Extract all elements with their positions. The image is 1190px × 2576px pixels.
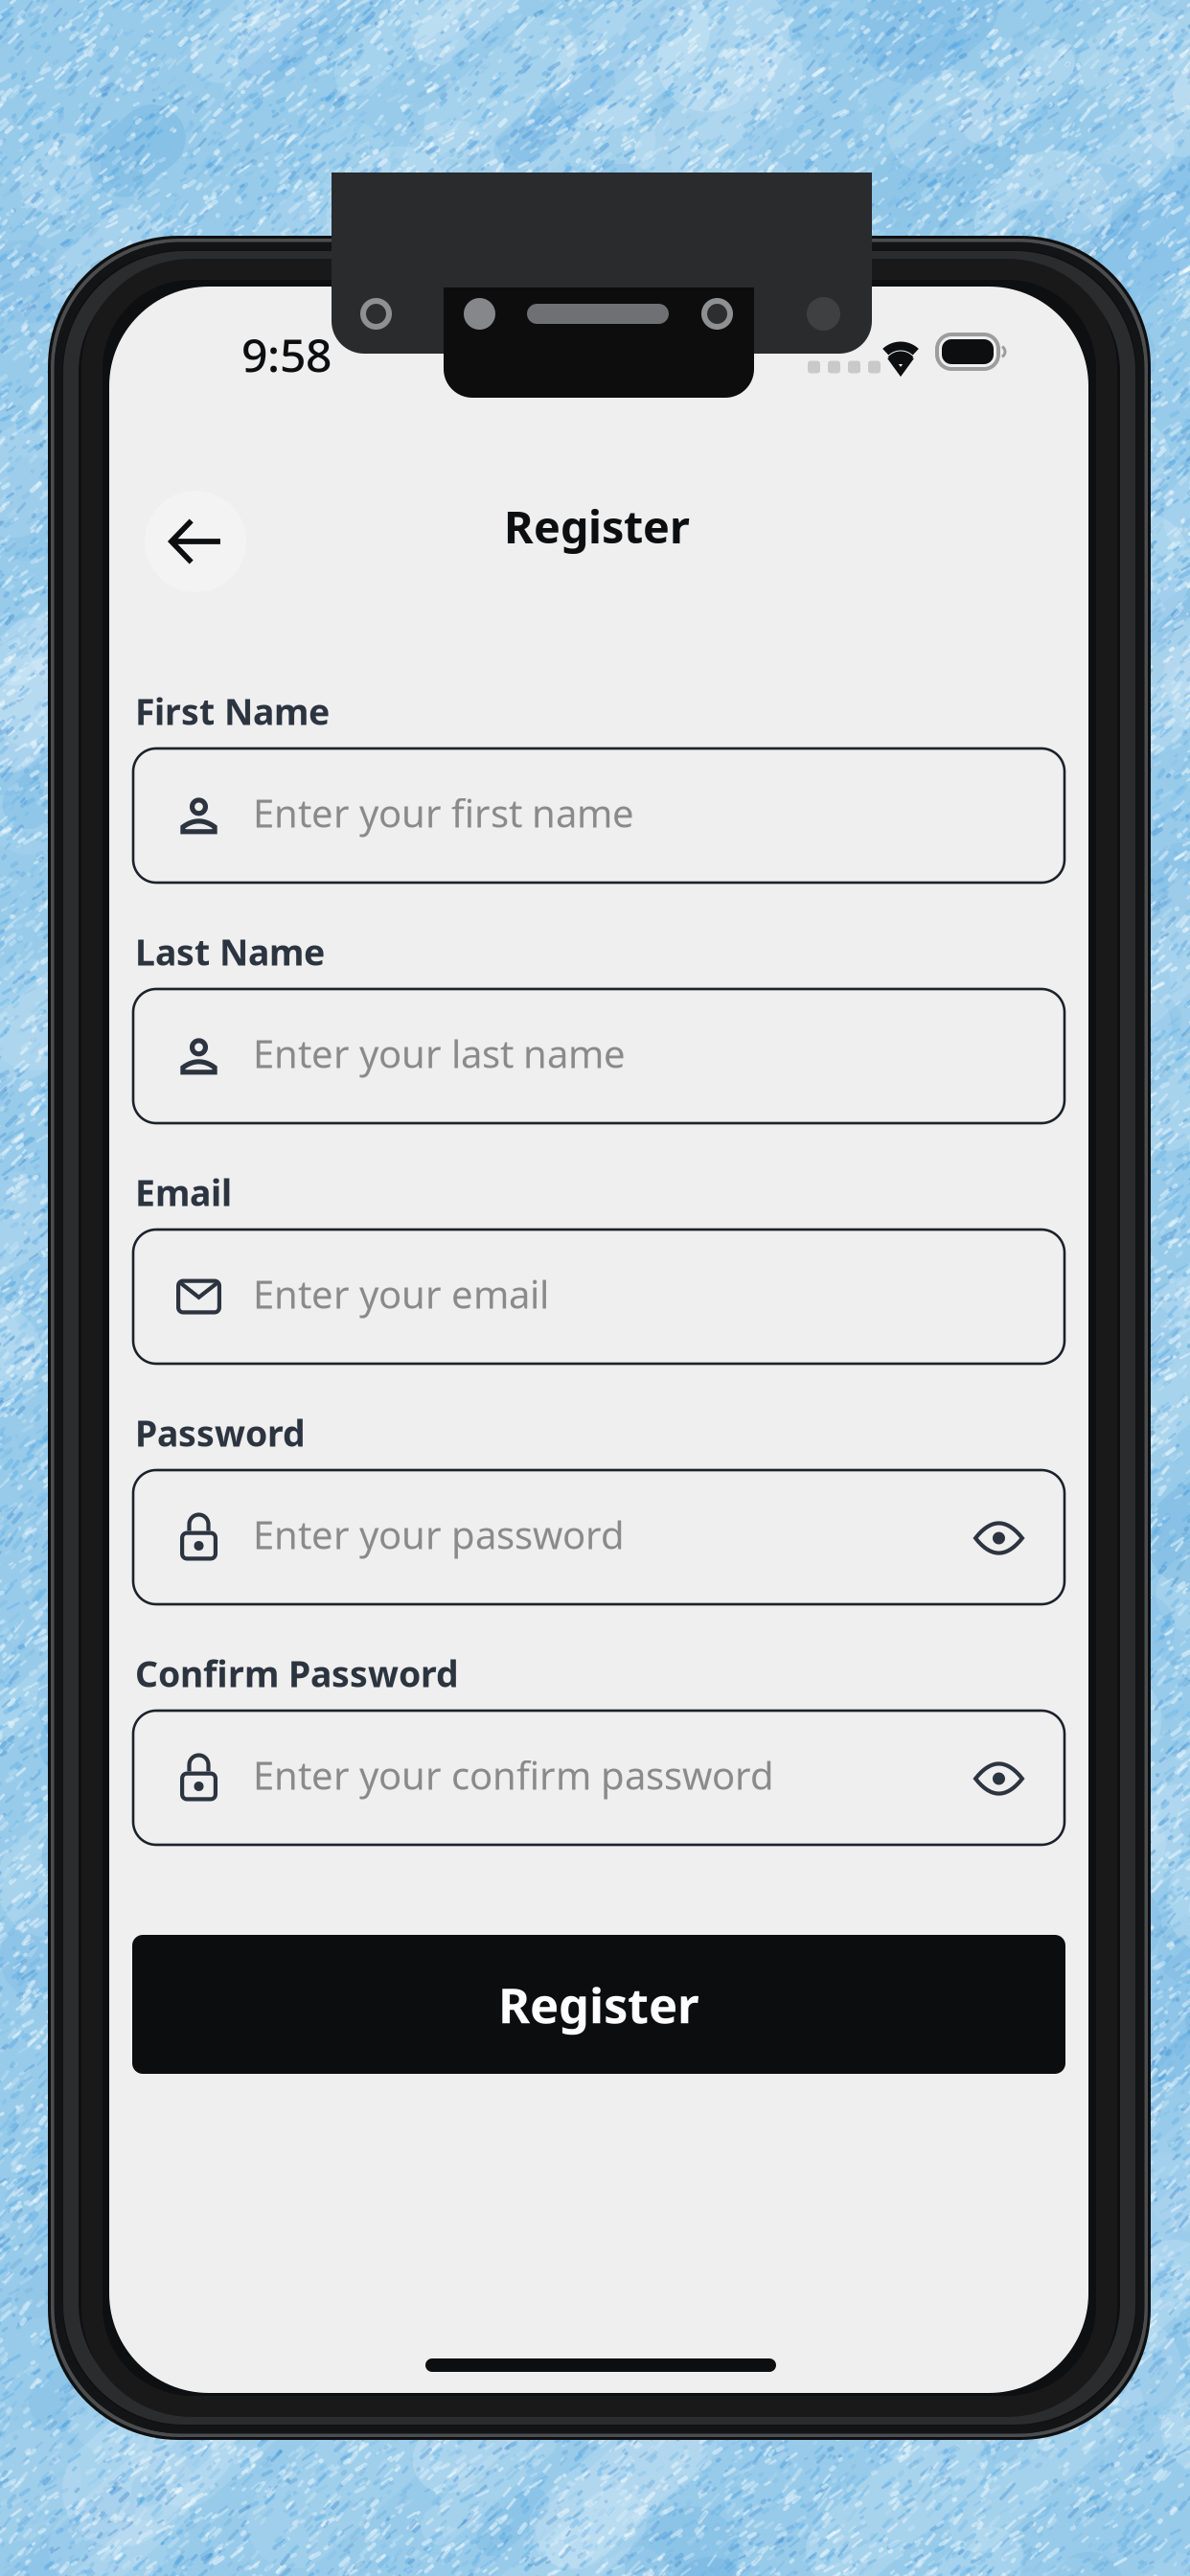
- staticText: Last Name: [135, 928, 325, 975]
- button[interactable]: Back: [145, 491, 246, 592]
- staticText: Enter your email: [253, 1268, 549, 1319]
- button[interactable]: Enter your password: [133, 1470, 1064, 1604]
- staticText: Confirm Password: [135, 1649, 459, 1697]
- staticText: 9:58: [241, 324, 332, 385]
- button[interactable]: Enter your last name: [133, 989, 1064, 1123]
- staticText: Email: [135, 1168, 232, 1216]
- button[interactable]: Enter your first name: [133, 748, 1064, 883]
- button[interactable]: Register: [132, 1935, 1065, 2074]
- button[interactable]: Show password: [962, 1520, 1036, 1556]
- staticText: Enter your first name: [253, 787, 634, 838]
- staticText: Register: [504, 496, 690, 556]
- staticText: Enter your password: [253, 1509, 625, 1560]
- button[interactable]: Enter your email: [133, 1230, 1064, 1364]
- button[interactable]: Enter your confirm password: [133, 1711, 1064, 1845]
- staticText: Enter your confirm password: [253, 1749, 774, 1800]
- staticText: Password: [135, 1409, 306, 1456]
- staticText: Register: [498, 1972, 699, 2037]
- button[interactable]: Show password: [962, 1761, 1036, 1796]
- staticText: Enter your last name: [253, 1028, 626, 1079]
- staticText: First Name: [135, 687, 330, 735]
